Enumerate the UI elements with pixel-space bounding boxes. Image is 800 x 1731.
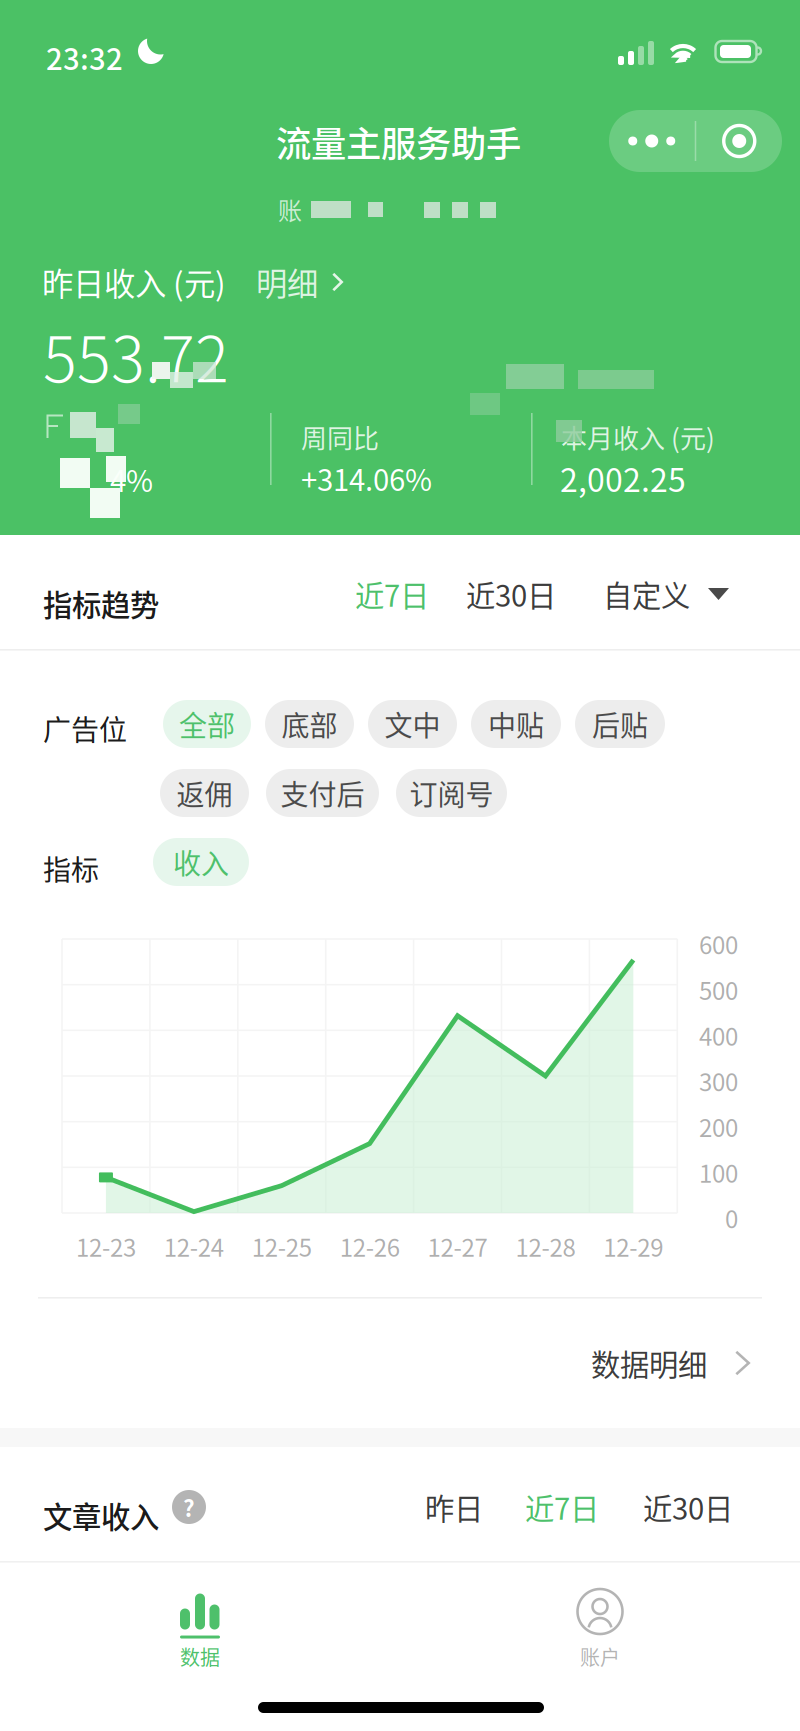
staticText: 553.72 <box>43 309 229 400</box>
staticText: 4% <box>110 458 153 500</box>
button[interactable]: 支付后 <box>266 769 379 817</box>
staticText: 全部 <box>179 704 235 744</box>
staticText: 流量主服务助手 <box>276 116 521 167</box>
staticText: 昨日收入 (元) <box>42 259 226 305</box>
staticText: 近7日 <box>525 1486 599 1528</box>
staticText: 中贴 <box>488 704 544 744</box>
staticText: 2,002.25 <box>560 455 686 501</box>
button[interactable]: 全部 <box>163 700 251 748</box>
staticText: 数据明细 <box>591 1342 707 1384</box>
staticText: 12-25 <box>252 1229 312 1264</box>
button[interactable]: 近7日 <box>343 563 441 625</box>
button[interactable]: 近30日 <box>455 563 567 625</box>
button[interactable]: 底部 <box>265 700 354 748</box>
staticText: 12-24 <box>164 1229 224 1264</box>
staticText: 100 <box>699 1155 738 1190</box>
button[interactable]: 账户 <box>400 1570 800 1690</box>
staticText: 23:32 <box>46 36 123 78</box>
button[interactable]: 返佣 <box>160 769 249 817</box>
staticText: 12-29 <box>603 1229 663 1264</box>
staticText: 近30日 <box>466 573 556 615</box>
staticText: 数据 <box>180 1642 220 1671</box>
staticText: 400 <box>699 1018 738 1053</box>
staticText: 0 <box>725 1200 738 1235</box>
staticText: 昨日 <box>425 1486 483 1528</box>
staticText: 12-28 <box>515 1229 575 1264</box>
staticText: 指标 <box>43 848 99 888</box>
staticText: 文中 <box>384 704 440 744</box>
staticText: 300 <box>699 1063 738 1098</box>
button[interactable]: 中贴 <box>471 700 561 748</box>
staticText: 支付后 <box>280 773 364 813</box>
button[interactable]: 收入 <box>153 838 249 886</box>
button[interactable]: 数据明细 <box>490 1320 750 1406</box>
staticText: 后贴 <box>592 704 648 744</box>
staticText: 本月收入 (元) <box>561 418 715 456</box>
button[interactable]: 昨日收入 (元) <box>42 260 422 304</box>
staticText: 12-27 <box>428 1229 488 1264</box>
staticText: 账户 <box>580 1642 620 1671</box>
staticText: 广告位 <box>43 708 127 748</box>
button[interactable]: 订阅号 <box>396 769 507 817</box>
staticText: 近30日 <box>643 1486 733 1528</box>
button[interactable]: 自定义 <box>597 563 735 625</box>
staticText: 收入 <box>173 842 229 882</box>
button[interactable]: 近7日 <box>513 1477 611 1537</box>
button[interactable]: 近30日 <box>631 1477 745 1537</box>
button[interactable]: 昨日 <box>414 1477 494 1537</box>
staticText: 文章收入 <box>43 1494 159 1536</box>
button[interactable]: 后贴 <box>575 700 665 748</box>
staticText: 周同比 <box>301 418 379 456</box>
staticText: 12-26 <box>340 1229 400 1264</box>
staticText: 自定义 <box>603 573 690 615</box>
button[interactable]: 数据 <box>0 1570 400 1690</box>
staticText: 返佣 <box>176 773 232 813</box>
button[interactable]: Close mini program <box>696 110 782 172</box>
button[interactable]: More <box>609 110 695 172</box>
staticText: 指标趋势 <box>43 582 159 624</box>
staticText: 200 <box>699 1109 738 1144</box>
staticText: ? <box>183 1491 195 1523</box>
staticText: 订阅号 <box>409 773 493 813</box>
staticText: 明细 <box>256 259 318 305</box>
staticText: 500 <box>699 972 738 1007</box>
staticText: +314.06% <box>301 457 432 499</box>
button[interactable]: 文中 <box>368 700 457 748</box>
staticText: 底部 <box>281 704 337 744</box>
staticText: 近7日 <box>355 573 429 615</box>
staticText: 12-23 <box>76 1229 136 1264</box>
staticText: 600 <box>699 926 738 961</box>
staticText: 账 <box>278 192 302 227</box>
